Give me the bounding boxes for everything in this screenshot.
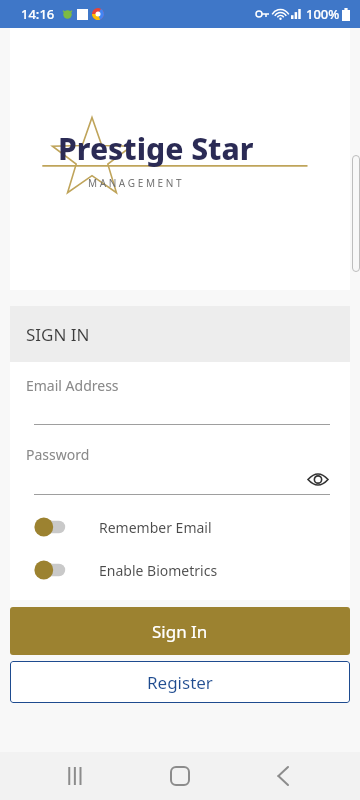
staticText: Email Address (26, 376, 119, 395)
button[interactable]: Register (10, 661, 350, 703)
button[interactable]: Home (152, 752, 208, 800)
staticText: M A N A G E M E N T (88, 176, 182, 190)
button[interactable]: Sign In (10, 607, 350, 655)
staticText: Sign In (152, 620, 208, 643)
button[interactable]: Recent apps (48, 752, 104, 800)
button[interactable]: Remember Email (10, 517, 350, 537)
button[interactable]: Back (256, 752, 312, 800)
staticText: Remember Email (99, 518, 212, 537)
staticText: Enable Biometrics (99, 561, 218, 580)
staticText: Prestige Star (58, 128, 254, 169)
staticText: 14:16 (21, 5, 55, 23)
staticText: Register (147, 671, 213, 694)
button[interactable]: Enable Biometrics (10, 560, 350, 580)
staticText: SIGN IN (26, 323, 90, 346)
button[interactable]: Show password (306, 467, 330, 491)
staticText: 100% (306, 5, 340, 23)
staticText: Password (26, 445, 90, 464)
